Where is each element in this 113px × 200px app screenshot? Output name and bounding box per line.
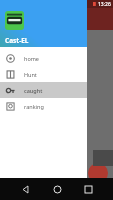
- staticText: Hunt: [24, 71, 37, 78]
- button[interactable]: Hunt: [0, 66, 87, 82]
- button[interactable]: Add: [88, 163, 108, 183]
- staticText: caught: [24, 87, 43, 94]
- button[interactable]: caught: [0, 82, 87, 98]
- button[interactable]: ranking: [0, 98, 87, 114]
- button[interactable]: Recents: [81, 182, 95, 196]
- button[interactable]: Back: [18, 182, 32, 196]
- staticText: ranking: [24, 103, 44, 110]
- staticText: Cast-EL: [5, 36, 29, 45]
- staticText: home: [24, 55, 39, 62]
- button[interactable]: home: [0, 50, 87, 66]
- button[interactable]: Home: [50, 182, 64, 196]
- staticText: 13:26: [98, 1, 111, 8]
